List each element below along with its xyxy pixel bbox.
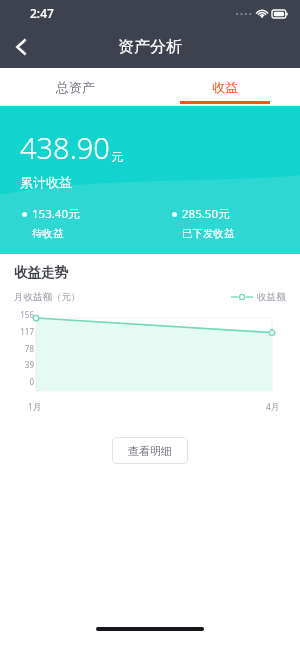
staticText: 153.40元 xyxy=(32,206,80,222)
staticText: 已下发收益 xyxy=(182,227,235,240)
button[interactable]: 总资产 xyxy=(0,68,150,105)
staticText: 438.90 xyxy=(20,128,110,167)
staticText: 收益额 xyxy=(257,291,286,303)
staticText: 收益走势 xyxy=(14,264,68,281)
staticText: 4月 xyxy=(266,401,280,413)
staticText: 285.50元 xyxy=(182,206,230,222)
staticText: 累计收益 xyxy=(20,174,72,190)
staticText: 资产分析 xyxy=(118,37,182,57)
staticText: 查看明细 xyxy=(128,444,172,458)
staticText: 元 xyxy=(111,149,123,164)
staticText: 1月 xyxy=(28,401,42,413)
staticText: 总资产 xyxy=(56,79,95,95)
staticText: 待收益 xyxy=(32,227,64,240)
staticText: 156 xyxy=(20,309,34,320)
staticText: 117 xyxy=(20,326,34,337)
staticText: 收益 xyxy=(212,79,238,95)
staticText: 2:47 xyxy=(30,5,54,21)
staticText: 0 xyxy=(29,376,34,387)
staticText: 78 xyxy=(24,343,34,354)
button[interactable]: 查看明细 xyxy=(112,437,188,464)
staticText: 39 xyxy=(24,359,34,370)
button[interactable]: 收益 xyxy=(150,68,300,105)
staticText: 月收益额（元） xyxy=(14,291,81,303)
button[interactable]: Back xyxy=(0,26,42,68)
